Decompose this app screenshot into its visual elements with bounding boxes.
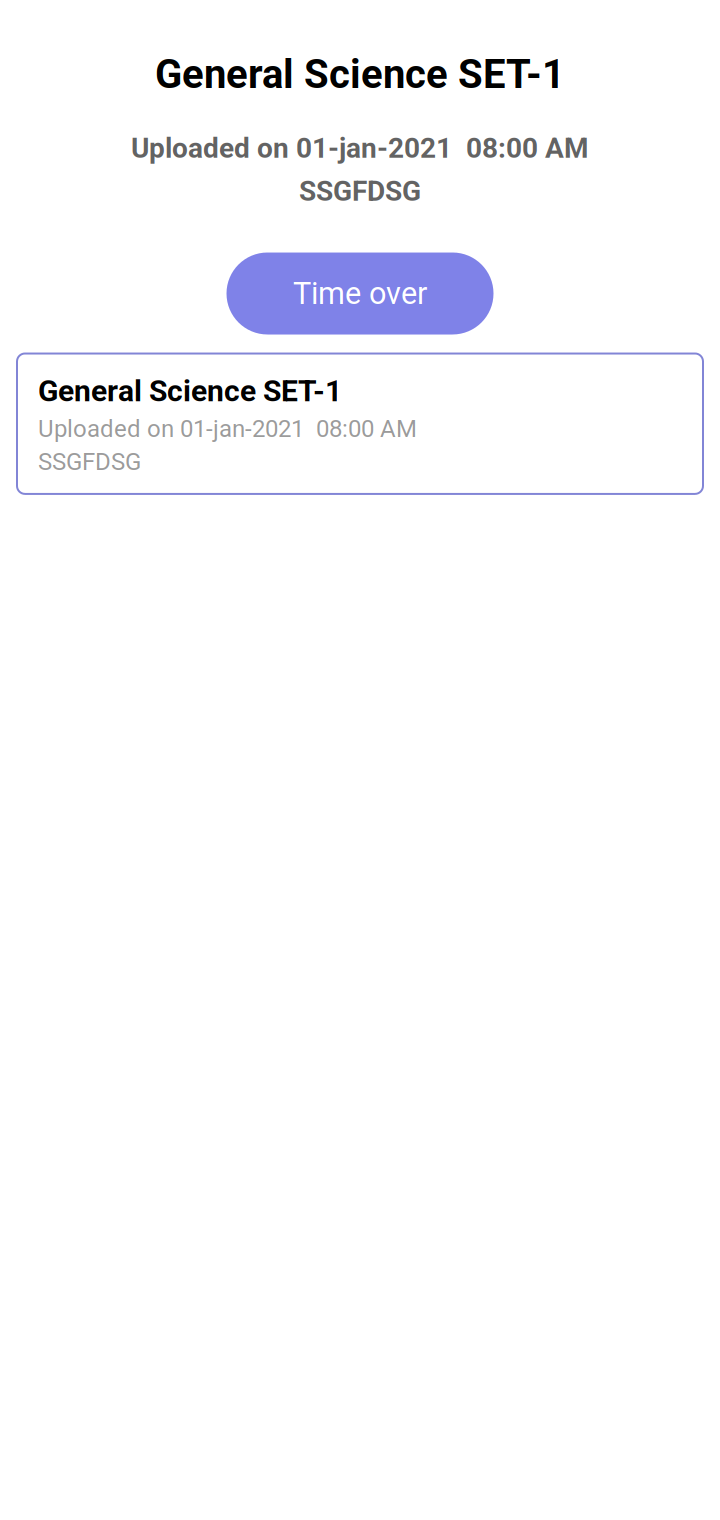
staticText: Uploaded on 01-jan-2021 08:00 AM [131,132,589,165]
staticText: General Science SET-1 [38,373,342,409]
staticText: Time over [293,275,427,311]
staticText: SSGFDSG [299,175,421,207]
button[interactable]: General Science SET-1 [17,353,703,494]
staticText: SSGFDSG [38,448,141,476]
staticText: Uploaded on 01-jan-2021 08:00 AM [38,415,417,443]
staticText: General Science SET-1 [155,51,565,98]
button[interactable]: Time over [226,252,493,334]
